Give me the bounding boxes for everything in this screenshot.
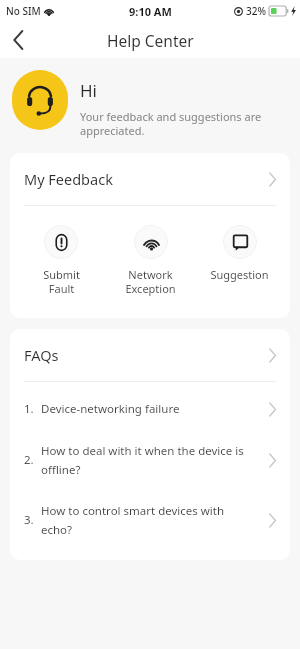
button[interactable]: FAQs [10, 329, 290, 381]
staticText: 9:10 AM [129, 4, 172, 19]
staticText: Your feedback and suggestions are apprec… [80, 109, 282, 139]
button[interactable]: Network Exception [106, 225, 195, 296]
button[interactable]: My Feedback [10, 153, 290, 205]
staticText: Suggestion [210, 267, 269, 282]
staticText: Submit Fault [43, 267, 80, 296]
staticText: How to deal with it when the device is o… [41, 443, 255, 477]
staticText: FAQs [24, 345, 269, 365]
button[interactable]: 2. [10, 430, 290, 490]
button[interactable]: Submit Fault [16, 225, 106, 296]
staticText: Hi [80, 79, 97, 102]
staticText: My Feedback [24, 169, 269, 189]
button[interactable]: Back [0, 22, 36, 58]
staticText: 2. [24, 452, 41, 468]
button[interactable]: Suggestion [195, 225, 284, 282]
staticText: 1. [24, 401, 41, 417]
staticText: 3. [24, 512, 41, 528]
button[interactable]: 3. [10, 490, 290, 550]
staticText: Network Exception [125, 267, 176, 296]
staticText: Help Center [107, 30, 194, 51]
button[interactable]: 1. [10, 388, 290, 430]
staticText: No SIM [6, 4, 41, 18]
staticText: How to control smart devices with echo? [41, 503, 255, 537]
staticText: Device-networking failure [41, 401, 255, 417]
staticText: 32% [246, 4, 266, 18]
